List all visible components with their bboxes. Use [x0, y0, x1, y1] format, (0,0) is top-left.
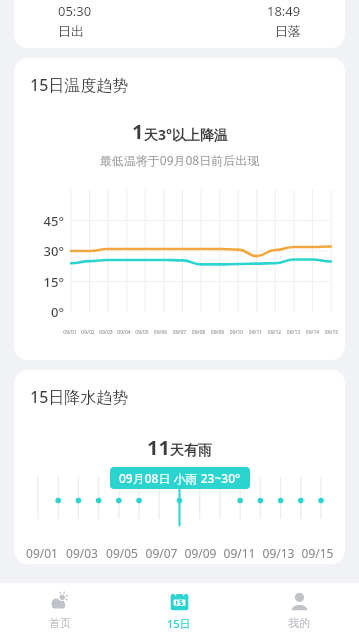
- other: 我的: [289, 591, 310, 612]
- staticText: 首页: [49, 616, 71, 630]
- staticText: 09月08日 小雨 23~30°: [119, 470, 241, 486]
- staticText: 09/09: [208, 329, 227, 336]
- button[interactable]: 15日降水趋势: [14, 370, 345, 564]
- staticText: 09/14: [303, 329, 322, 336]
- staticText: 0°: [20, 303, 64, 321]
- other: 首页: [49, 591, 70, 612]
- staticText: 09/07: [170, 329, 189, 336]
- staticText: 15日降水趋势: [30, 386, 129, 408]
- staticText: 15日温度趋势: [30, 74, 129, 96]
- button[interactable]: 05:30: [14, 0, 345, 48]
- staticText: 1: [132, 118, 144, 145]
- staticText: 09/01: [22, 545, 62, 561]
- staticText: 11: [147, 434, 170, 461]
- staticText: 05:30: [58, 2, 92, 20]
- staticText: 18:49: [267, 2, 301, 20]
- staticText: 09/10: [227, 329, 246, 336]
- staticText: 15°: [20, 273, 64, 291]
- staticText: 我的: [288, 616, 310, 630]
- staticText: 09/03: [97, 329, 115, 336]
- staticText: 日落: [275, 23, 301, 39]
- staticText: 09/03: [62, 545, 102, 561]
- staticText: 09/13: [259, 545, 298, 561]
- staticText: 09/05: [102, 545, 142, 561]
- staticText: 09/04: [115, 329, 133, 336]
- button[interactable]: 09月08日 小雨 23~30°: [110, 467, 250, 489]
- staticText: 09/07: [142, 545, 181, 561]
- button[interactable]: 我的: [239, 583, 359, 638]
- staticText: 最低温将于09月08日前后出现: [14, 152, 345, 168]
- staticText: 09/15: [298, 545, 337, 561]
- staticText: 09/11: [220, 545, 259, 561]
- staticText: 日出: [58, 23, 84, 39]
- button[interactable]: 15日: [119, 583, 239, 638]
- other: 15日: [169, 591, 190, 612]
- staticText: 天3°以上降温: [144, 125, 228, 144]
- staticText: 15日: [167, 616, 191, 631]
- staticText: 09/08: [189, 329, 208, 336]
- staticText: 30°: [20, 242, 64, 260]
- staticText: 09/13: [284, 329, 303, 336]
- staticText: 09/12: [265, 329, 284, 336]
- staticText: 09/01: [61, 329, 79, 336]
- staticText: 09/06: [151, 329, 170, 336]
- staticText: 09/09: [181, 545, 220, 561]
- button[interactable]: 15日温度趋势: [14, 58, 345, 360]
- staticText: 天有雨: [170, 442, 212, 460]
- button[interactable]: 首页: [0, 583, 119, 638]
- staticText: 45°: [20, 212, 64, 230]
- staticText: 09/11: [246, 329, 265, 336]
- staticText: 09/15: [322, 329, 341, 336]
- staticText: 09/02: [79, 329, 97, 336]
- staticText: 09/05: [133, 329, 151, 336]
